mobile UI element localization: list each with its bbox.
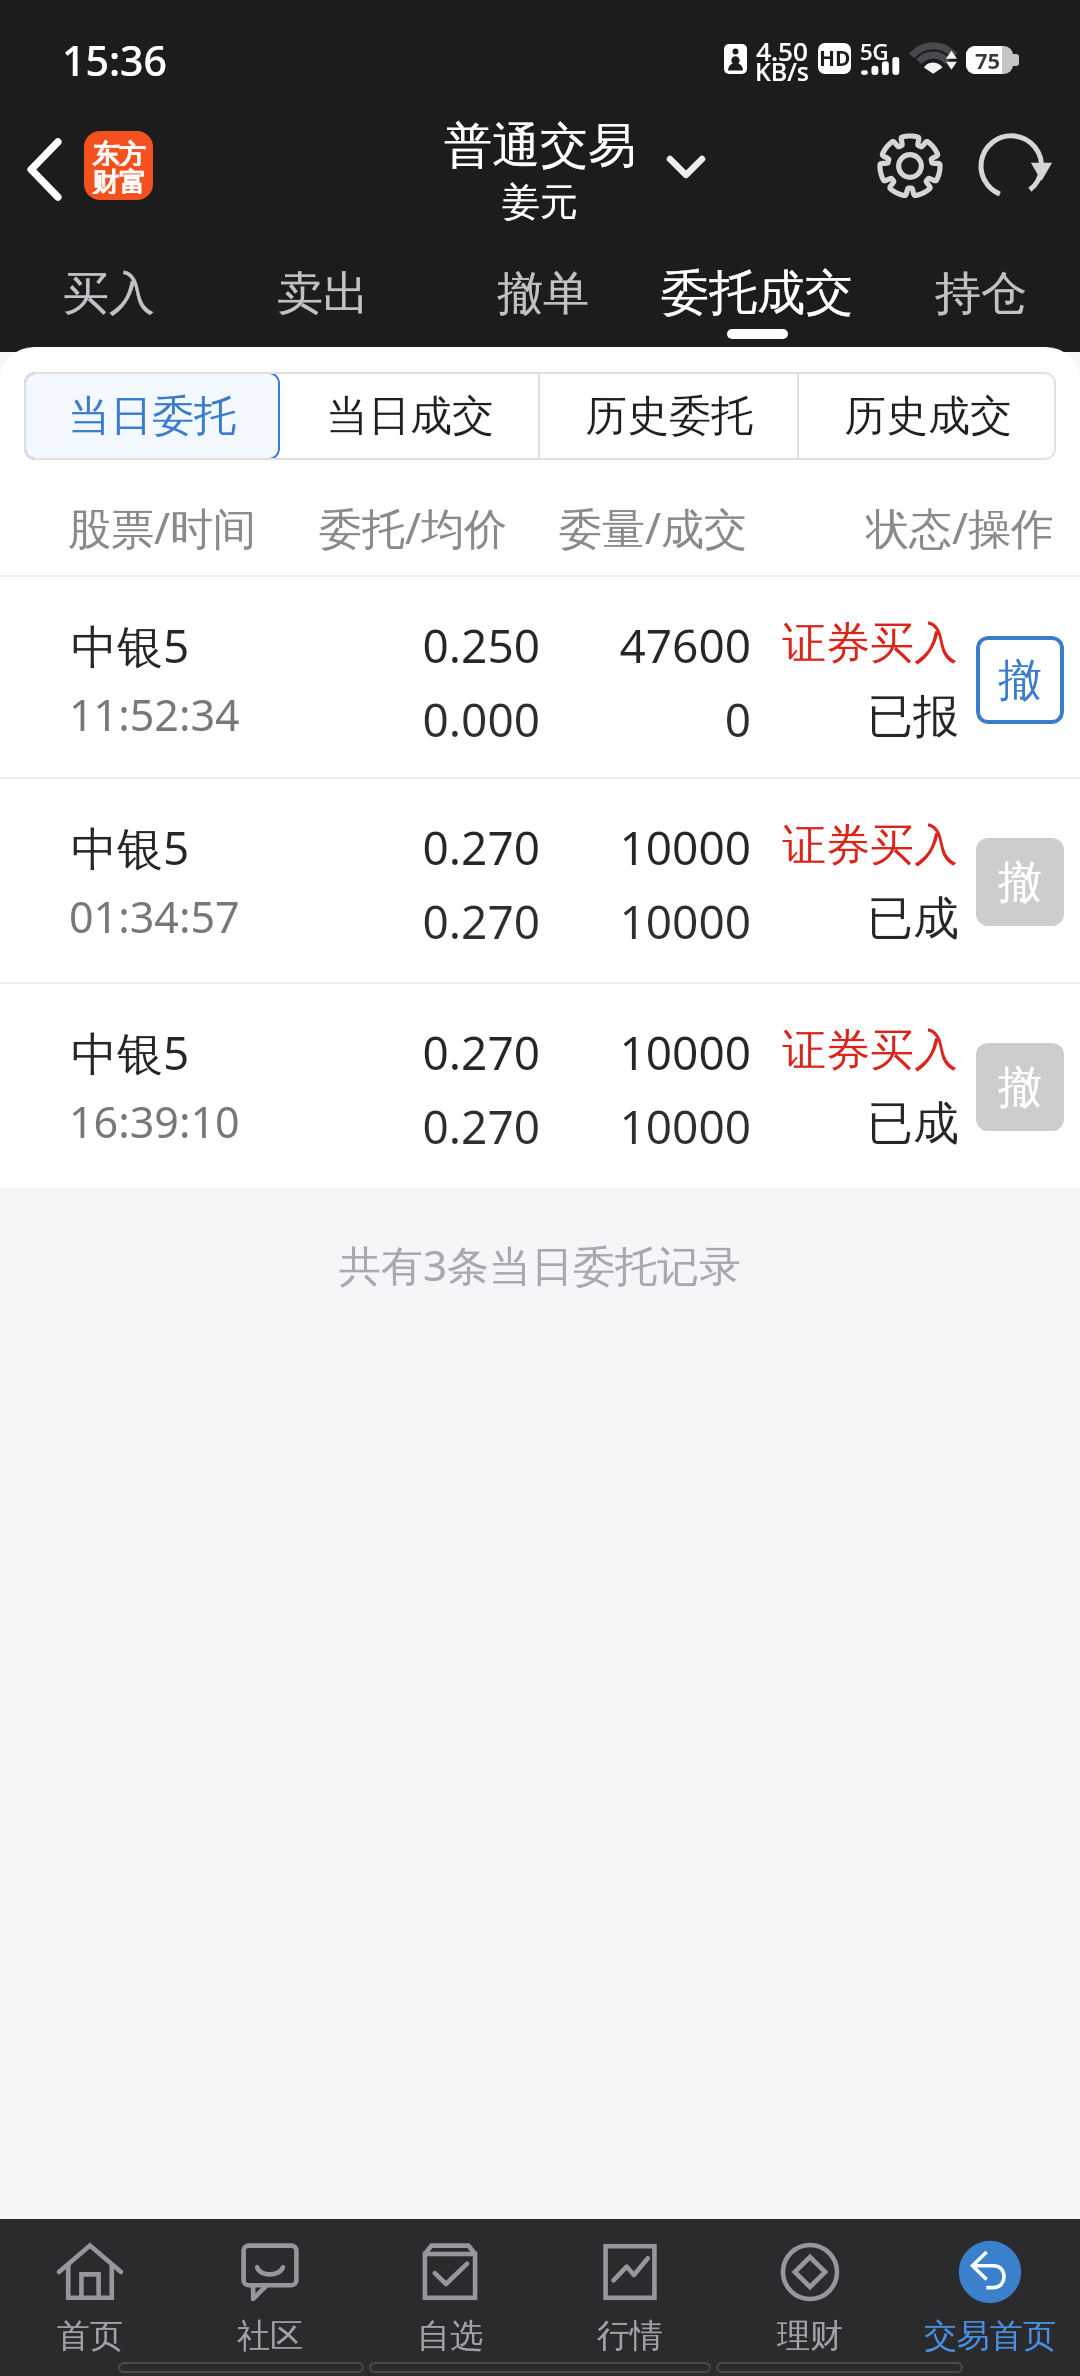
staticText: 状态/操作	[866, 498, 1054, 557]
staticText: 中银5	[71, 1021, 190, 1084]
staticText: 11:52:34	[69, 685, 240, 744]
staticText: 中银5	[71, 614, 190, 677]
staticText: 财富	[92, 166, 146, 194]
staticText: 0.250	[330, 614, 540, 677]
staticText: 已成	[770, 1095, 959, 1153]
button[interactable]: 行情	[540, 2219, 720, 2358]
staticText: 首页	[57, 2315, 123, 2357]
staticText: 证券买入	[770, 1023, 958, 1078]
button[interactable]: Settings	[860, 111, 960, 221]
button[interactable]: Refresh	[967, 111, 1067, 221]
staticText: 47600	[560, 614, 751, 677]
staticText: 0	[560, 688, 751, 751]
staticText: 01:34:57	[69, 887, 240, 946]
button[interactable]: 历史成交	[799, 372, 1056, 460]
button[interactable]: 社区	[180, 2219, 360, 2358]
staticText: 姜元	[502, 178, 578, 226]
staticText: 0.000	[330, 688, 540, 751]
staticText: 共有3条当日委托记录	[0, 1236, 1080, 1293]
button[interactable]: 历史委托	[540, 372, 797, 460]
staticText: 0.270	[330, 890, 540, 953]
staticText: 已成	[770, 890, 959, 948]
staticText: 委托成交	[661, 263, 853, 323]
staticText: 中银5	[71, 816, 190, 879]
staticText: 已报	[770, 688, 959, 746]
button[interactable]: 中银5	[0, 575, 1080, 779]
staticText: 0.270	[330, 1095, 540, 1158]
button[interactable]: 中银5	[0, 982, 1080, 1186]
staticText: 10000	[560, 816, 751, 879]
staticText: 委量/成交	[559, 498, 747, 557]
staticText: 0.270	[330, 1021, 540, 1084]
staticText: HD	[819, 44, 851, 73]
staticText: 当日成交	[326, 390, 494, 443]
button[interactable]: 当日委托	[24, 372, 280, 460]
staticText: 撤单	[497, 265, 589, 323]
staticText: 0.270	[330, 816, 540, 879]
staticText: 卖出	[277, 265, 369, 323]
staticText: 5G	[860, 36, 889, 66]
staticText: KB/s	[755, 54, 809, 88]
staticText: 10000	[560, 890, 751, 953]
button[interactable]: 理财	[720, 2219, 900, 2358]
staticText: 委托/均价	[319, 498, 507, 557]
staticText: 交易首页	[924, 2315, 1056, 2357]
staticText: 普通交易	[444, 116, 636, 176]
button[interactable]: 自选	[360, 2219, 540, 2358]
staticText: 10000	[560, 1095, 751, 1158]
staticText: 当日委托	[68, 390, 236, 443]
staticText: 证券买入	[770, 818, 958, 873]
button[interactable]: 交易首页	[900, 2219, 1080, 2358]
staticText: 撤	[998, 1060, 1042, 1115]
button[interactable]: 首页	[0, 2219, 180, 2358]
button[interactable]: Cancel order	[976, 838, 1064, 926]
staticText: 撤	[998, 855, 1042, 910]
staticText: 买入	[63, 265, 155, 323]
button[interactable]: East Money logo	[84, 131, 153, 200]
button[interactable]: Switch account	[648, 132, 724, 202]
staticText: 持仓	[935, 265, 1027, 323]
staticText: 10000	[560, 1021, 751, 1084]
staticText: 16:39:10	[69, 1092, 240, 1151]
button[interactable]: 普通交易	[356, 116, 724, 226]
staticText: 自选	[417, 2315, 483, 2357]
staticText: 股票/时间	[68, 498, 256, 557]
button[interactable]: Cancel order	[976, 1043, 1064, 1131]
button[interactable]: Cancel order	[976, 636, 1064, 724]
staticText: 历史委托	[585, 390, 753, 443]
staticText: 社区	[237, 2315, 303, 2357]
button[interactable]: Back	[0, 112, 93, 226]
staticText: 15:36	[62, 32, 167, 88]
staticText: 4.50	[755, 33, 809, 68]
staticText: 东方	[92, 138, 146, 166]
staticText: 撤	[998, 653, 1042, 708]
staticText: 证券买入	[770, 616, 958, 671]
staticText: 行情	[597, 2315, 663, 2357]
button[interactable]: 中银5	[0, 777, 1080, 981]
button[interactable]: 当日成交	[282, 372, 538, 460]
staticText: 历史成交	[844, 390, 1012, 443]
staticText: 理财	[777, 2315, 843, 2357]
staticText: 75	[975, 46, 1001, 73]
